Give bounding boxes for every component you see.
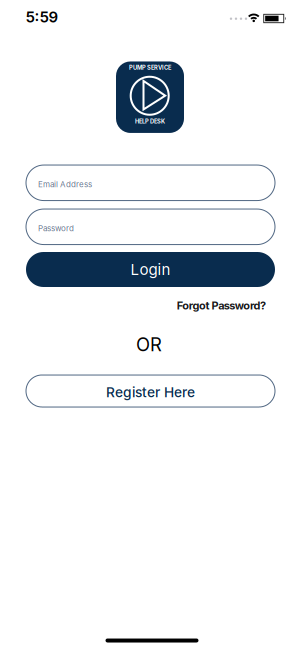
staticText: 5:59 — [25, 8, 58, 26]
staticText: PUMP SERVICE — [129, 64, 171, 71]
staticText: OR — [136, 333, 162, 356]
button[interactable]: Forgot Password? — [177, 299, 266, 312]
button[interactable]: Login — [26, 252, 275, 287]
staticText: Register Here — [106, 384, 195, 400]
button[interactable]: Register Here — [26, 375, 275, 407]
staticText: HELP DESK — [135, 118, 165, 125]
staticText: Login — [130, 260, 170, 279]
staticText: Forgot Password? — [177, 299, 266, 312]
staticText: Password — [38, 223, 74, 233]
staticText: Email Address — [38, 179, 92, 189]
